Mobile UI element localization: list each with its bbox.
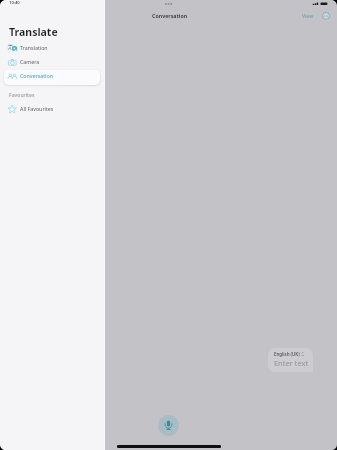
button[interactable]: Translation xyxy=(4,41,100,56)
staticText: Conversation xyxy=(20,72,53,79)
staticText: Translation xyxy=(20,44,48,51)
button[interactable]: English (UK) xyxy=(268,348,313,372)
button[interactable]: Conversation xyxy=(4,70,100,85)
button[interactable]: View xyxy=(298,9,318,22)
button[interactable]: More options xyxy=(318,8,334,24)
button[interactable]: All Favourites xyxy=(4,102,100,117)
staticText: Enter text xyxy=(274,358,309,368)
staticText: English (UK) xyxy=(274,351,300,357)
staticText: All Favourites xyxy=(20,105,54,112)
staticText: 10:40 xyxy=(9,0,20,6)
staticText: View xyxy=(302,13,314,20)
staticText: Conversation xyxy=(152,12,188,19)
button[interactable]: Camera xyxy=(4,55,100,70)
staticText: Translate xyxy=(9,25,58,39)
staticText: Camera xyxy=(20,58,40,65)
staticText: Favourites xyxy=(9,92,35,99)
button[interactable]: Start listening xyxy=(158,415,179,436)
